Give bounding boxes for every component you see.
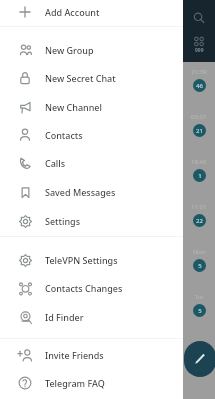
staticText: 22 <box>196 217 203 225</box>
button[interactable]: New Secret Chat <box>0 64 183 92</box>
staticText: 21 <box>196 127 203 135</box>
button[interactable]: Telegram FAQ <box>0 369 183 397</box>
staticText: 1 <box>198 172 202 180</box>
button[interactable]: 00:07 <box>183 113 215 158</box>
button[interactable]: Contacts Changes <box>0 274 183 302</box>
staticText: Add Account <box>45 6 100 18</box>
staticText: New Secret Chat <box>45 72 116 84</box>
button[interactable]: Saved Messages <box>0 178 183 206</box>
staticText: TeleVPN Settings <box>45 254 118 266</box>
staticText: 5 <box>198 262 202 270</box>
staticText: Tul <box>195 293 204 301</box>
button[interactable]: Add Account <box>0 0 183 26</box>
button[interactable]: Id Finder <box>0 303 183 331</box>
staticText: Contacts <box>45 129 83 141</box>
staticText: Mon <box>193 248 206 256</box>
button[interactable]: Tul <box>183 293 215 338</box>
button[interactable]: TeleVPN Settings <box>0 246 183 274</box>
staticText: Contacts Changes <box>45 282 123 294</box>
staticText: 21:39 <box>191 68 207 76</box>
button[interactable]: Calls <box>0 149 183 177</box>
staticText: 00:07 <box>191 113 207 121</box>
staticText: New Group <box>45 44 94 56</box>
staticText: Saved Messages <box>45 186 116 198</box>
staticText: New Channel <box>45 101 102 113</box>
button[interactable]: 11:01 <box>183 203 215 248</box>
staticText: 18:45 <box>191 158 207 166</box>
button[interactable]: Invite Friends <box>0 341 183 369</box>
button[interactable]: New message <box>184 341 215 377</box>
button[interactable]: Contacts <box>0 121 183 149</box>
button[interactable]: 18:45 <box>183 158 215 203</box>
button[interactable]: New Group <box>0 36 183 64</box>
staticText: Calls <box>45 157 66 169</box>
button[interactable]: 21:39 <box>183 68 215 113</box>
staticText: Settings <box>45 215 81 227</box>
staticText: Id Finder <box>45 311 84 323</box>
button[interactable]: Settings <box>0 207 183 235</box>
staticText: 999 <box>195 47 204 54</box>
staticText: 11:01 <box>191 203 207 211</box>
button[interactable]: New Channel <box>0 93 183 121</box>
button[interactable]: Search <box>190 9 208 27</box>
staticText: 5 <box>198 307 202 315</box>
button[interactable]: Mon <box>183 248 215 293</box>
staticText: Invite Friends <box>45 349 104 361</box>
staticText: 46 <box>196 82 203 90</box>
button[interactable]: Contacts <box>190 33 208 51</box>
staticText: Telegram FAQ <box>45 377 105 389</box>
